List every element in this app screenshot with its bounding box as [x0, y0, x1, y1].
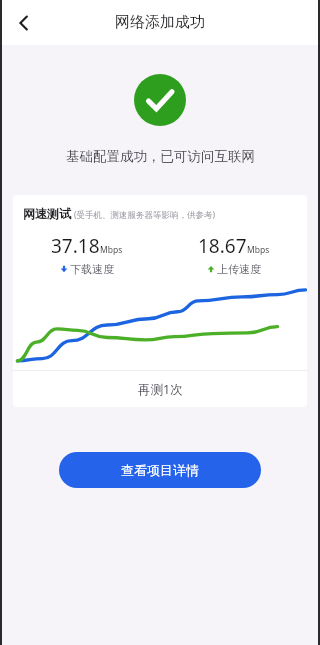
staticText: 37.18	[51, 233, 100, 259]
staticText: 上传速度	[217, 262, 261, 276]
staticText: 再测1次	[138, 381, 183, 398]
staticText: 18.67	[198, 233, 247, 259]
staticText: Mbps	[247, 244, 270, 256]
staticText: (受手机、测速服务器等影响，供参考)	[74, 209, 216, 221]
staticText: 网速测试	[23, 206, 71, 221]
staticText: 基础配置成功，已可访问互联网	[66, 148, 255, 165]
button[interactable]: 查看项目详情	[59, 452, 261, 488]
staticText: 查看项目详情	[121, 462, 199, 478]
staticText: 网络添加成功	[115, 13, 205, 32]
button[interactable]: Back	[2, 1, 46, 45]
staticText: Mbps	[100, 244, 123, 256]
button[interactable]: 再测1次	[13, 371, 307, 407]
staticText: 下载速度	[70, 262, 114, 276]
